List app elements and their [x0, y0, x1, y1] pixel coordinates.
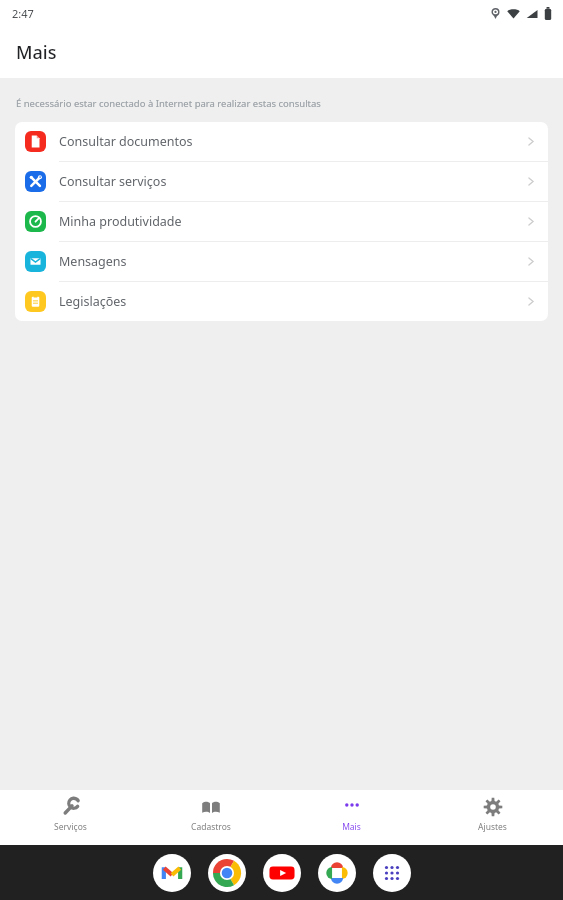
staticText: Consultar serviços	[59, 173, 527, 190]
staticText: Cadastros	[191, 821, 231, 833]
button[interactable]: Cadastros	[140, 797, 281, 845]
staticText: Legislações	[59, 293, 527, 310]
button[interactable]: Serviços	[0, 797, 140, 845]
staticText: 2:47	[12, 6, 34, 21]
staticText: Mais	[342, 821, 361, 833]
button[interactable]: All apps	[373, 854, 411, 892]
button[interactable]: Mensagens	[15, 242, 548, 281]
button[interactable]: Mais	[281, 797, 422, 845]
button[interactable]: Legislações	[15, 282, 548, 321]
button[interactable]: Google Photos	[318, 854, 356, 892]
button[interactable]: Consultar serviços	[15, 162, 548, 201]
staticText: Minha produtividade	[59, 213, 527, 230]
staticText: Ajustes	[478, 821, 507, 833]
staticText: Mais	[16, 40, 57, 65]
staticText: Mensagens	[59, 253, 527, 270]
button[interactable]: Ajustes	[422, 797, 563, 845]
button[interactable]: Consultar documentos	[15, 122, 548, 161]
staticText: Consultar documentos	[59, 133, 527, 150]
button[interactable]: Minha produtividade	[15, 202, 548, 241]
button[interactable]: Gmail	[153, 854, 191, 892]
button[interactable]: Chrome	[208, 854, 246, 892]
button[interactable]: YouTube	[263, 854, 301, 892]
staticText: É necessário estar conectado à Internet …	[16, 97, 321, 110]
staticText: Serviços	[54, 821, 87, 833]
